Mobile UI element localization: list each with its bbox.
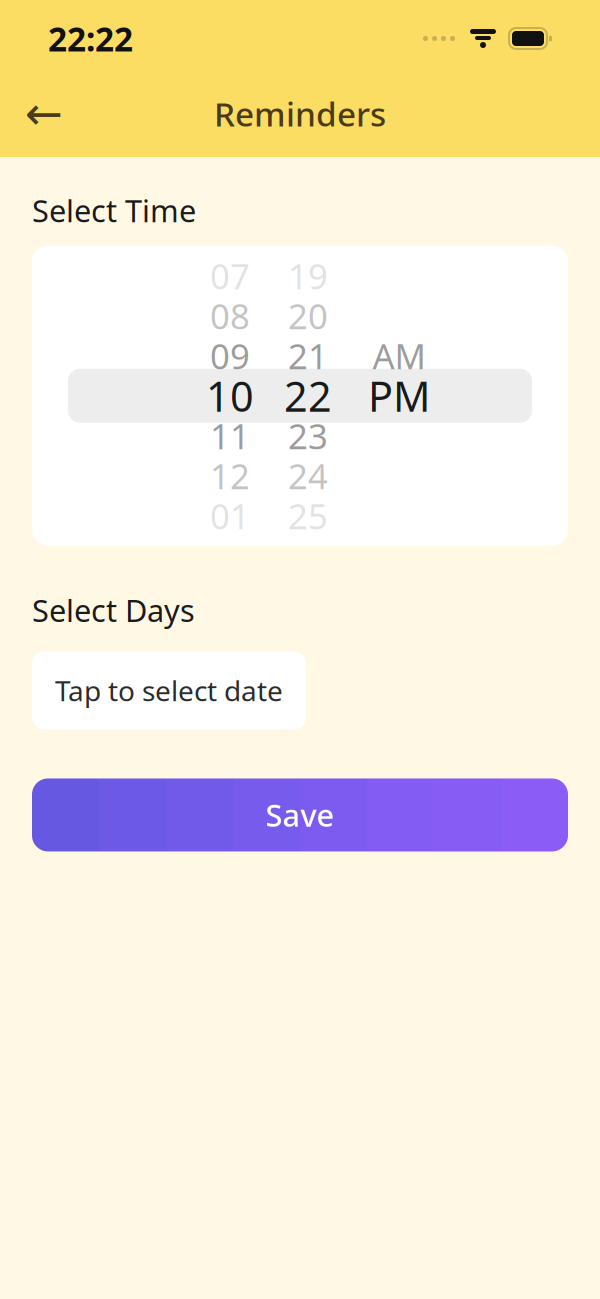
staticText: 12 — [210, 453, 250, 499]
staticText: PM — [368, 368, 430, 423]
staticText: 08 — [210, 293, 250, 339]
button[interactable]: Tap to select date — [32, 651, 306, 729]
staticText: 22:22 — [48, 16, 133, 61]
staticText: 07 — [210, 253, 250, 299]
staticText: Save — [265, 795, 334, 835]
staticText: 24 — [288, 453, 328, 499]
staticText: 01 — [210, 493, 250, 539]
staticText: ← — [25, 88, 63, 139]
staticText: Select Time — [32, 190, 196, 231]
button[interactable]: Save — [32, 778, 568, 851]
staticText: 20 — [288, 293, 328, 339]
staticText: 10 — [206, 368, 254, 423]
staticText: 19 — [288, 253, 328, 299]
staticText: Reminders — [214, 91, 386, 136]
staticText: 22 — [284, 368, 332, 423]
staticText: Select Days — [32, 590, 195, 630]
staticText: AM — [372, 333, 425, 379]
button[interactable]: Back — [18, 87, 70, 139]
staticText: Tap to select date — [55, 672, 283, 709]
staticText: 23 — [288, 413, 328, 459]
staticText: 25 — [288, 493, 328, 539]
staticText: 21 — [288, 333, 328, 379]
staticText: 11 — [210, 413, 250, 459]
staticText: 09 — [210, 333, 250, 379]
